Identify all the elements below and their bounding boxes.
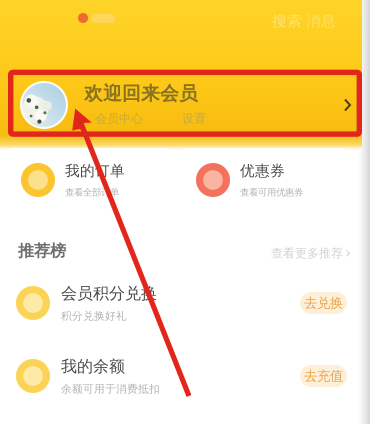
- staticText: 去兑换: [304, 295, 343, 311]
- button[interactable]: 我的订单: [5, 148, 173, 212]
- button[interactable]: 查看更多推荐: [267, 240, 354, 267]
- staticText: 积分兑换好礼: [61, 309, 127, 322]
- staticText: 设置: [182, 111, 206, 126]
- staticText: 我的订单: [65, 162, 125, 180]
- staticText: 查看更多推荐: [271, 246, 343, 261]
- staticText: 查看可用优惠券: [240, 187, 303, 198]
- staticText: 消息: [306, 12, 336, 30]
- staticText: 会员积分兑换: [61, 284, 157, 303]
- staticText: 查看全部订单: [65, 187, 119, 198]
- staticText: 会员中心: [95, 111, 143, 126]
- staticText: 我的余额: [61, 357, 125, 376]
- staticText: 搜索: [272, 12, 302, 30]
- button[interactable]: 优惠券: [180, 148, 348, 212]
- staticText: 余额可用于消费抵扣: [61, 382, 160, 395]
- button[interactable]: 会员积分兑换: [0, 268, 362, 338]
- button[interactable]: 我的余额: [0, 341, 362, 411]
- staticText: 欢迎回来会员: [84, 82, 198, 105]
- staticText: 去充值: [304, 368, 343, 384]
- button[interactable]: 欢迎回来会员: [0, 73, 362, 137]
- staticText: 优惠券: [240, 162, 285, 180]
- staticText: 推荐榜: [18, 241, 66, 261]
